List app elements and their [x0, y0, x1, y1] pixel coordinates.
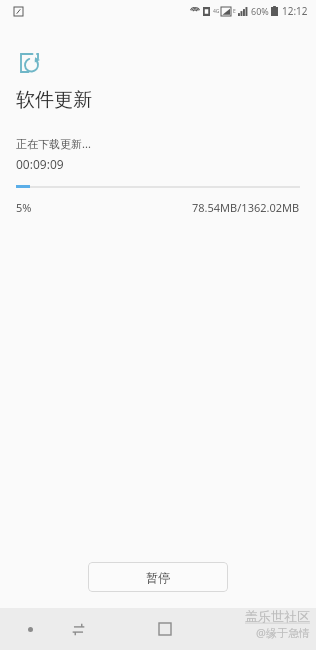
- button[interactable]: Recents: [12, 611, 48, 647]
- staticText: 12:12: [282, 4, 308, 18]
- staticText: 软件更新: [16, 88, 92, 112]
- staticText: E: [233, 8, 236, 15]
- button[interactable]: Back: [60, 611, 96, 647]
- staticText: 60%: [251, 5, 269, 17]
- staticText: 正在下载更新...: [16, 136, 91, 151]
- staticText: 5%: [16, 200, 32, 215]
- staticText: 00:09:09: [16, 156, 64, 172]
- staticText: @缘于急情: [256, 625, 310, 640]
- staticText: 78.54MB/1362.02MB: [192, 200, 300, 215]
- staticText: 暂停: [146, 570, 170, 585]
- button[interactable]: 暂停: [88, 562, 228, 592]
- staticText: 盖乐世社区: [245, 608, 310, 624]
- staticText: 4G: [213, 8, 220, 15]
- button[interactable]: Home: [147, 611, 183, 647]
